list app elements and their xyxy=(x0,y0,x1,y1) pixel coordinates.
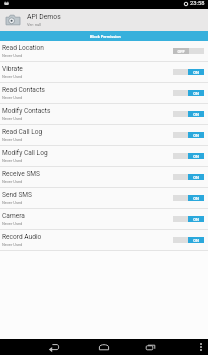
button[interactable]: Vibrate xyxy=(0,62,208,83)
staticText: Read Call Log xyxy=(2,128,43,136)
button[interactable]: Receive SMS xyxy=(0,167,208,188)
staticText: Never Used xyxy=(2,95,23,100)
button[interactable]: Toggle off xyxy=(173,48,204,54)
staticText: Never Used xyxy=(2,200,23,205)
staticText: ON xyxy=(193,238,199,243)
button[interactable]: Toggle on xyxy=(173,195,204,201)
button[interactable]: Modify Call Log xyxy=(0,146,208,167)
staticText: ON xyxy=(193,112,199,117)
staticText: OFF xyxy=(177,49,185,54)
button[interactable]: Toggle on xyxy=(173,174,204,180)
staticText: ON xyxy=(193,70,199,75)
button[interactable]: Camera xyxy=(0,209,208,230)
staticText: Modify Call Log xyxy=(2,149,48,157)
staticText: ON xyxy=(193,133,199,138)
button[interactable]: Recent apps xyxy=(142,339,160,355)
button[interactable]: Read Call Log xyxy=(0,125,208,146)
staticText: Never Used xyxy=(2,137,23,142)
staticText: Vibrate xyxy=(2,65,23,73)
staticText: Never Used xyxy=(2,242,23,247)
button[interactable]: Read Contacts xyxy=(0,83,208,104)
button[interactable]: Toggle on xyxy=(173,153,204,159)
button[interactable]: Toggle on xyxy=(173,216,204,222)
button[interactable]: Toggle on xyxy=(173,111,204,117)
staticText: Never Used xyxy=(2,179,23,184)
staticText: Modify Contacts xyxy=(2,107,51,115)
button[interactable]: Toggle on xyxy=(173,132,204,138)
staticText: Ver: null xyxy=(27,22,42,27)
button[interactable]: Read Location xyxy=(0,41,208,62)
staticText: Block Permission xyxy=(90,34,121,39)
staticText: API Demos xyxy=(27,13,61,21)
staticText: Send SMS xyxy=(2,191,32,199)
staticText: Read Contacts xyxy=(2,86,45,94)
staticText: ON xyxy=(193,196,199,201)
staticText: Camera xyxy=(2,212,25,220)
button[interactable]: Toggle on xyxy=(173,90,204,96)
staticText: ON xyxy=(193,175,199,180)
button[interactable]: Toggle on xyxy=(173,237,204,243)
staticText: 23:58 xyxy=(190,0,205,7)
button[interactable]: Back xyxy=(45,339,63,355)
staticText: Read Location xyxy=(2,44,45,52)
button[interactable]: More options xyxy=(194,339,208,355)
button[interactable]: Record Audio xyxy=(0,230,208,251)
staticText: Never Used xyxy=(2,53,23,58)
staticText: Never Used xyxy=(2,221,23,226)
staticText: ON xyxy=(193,217,199,222)
staticText: Never Used xyxy=(2,116,23,121)
staticText: Never Used xyxy=(2,74,23,79)
button[interactable]: Toggle on xyxy=(173,69,204,75)
staticText: ON xyxy=(193,91,199,96)
button[interactable]: Send SMS xyxy=(0,188,208,209)
button[interactable]: Modify Contacts xyxy=(0,104,208,125)
button[interactable]: Home xyxy=(95,339,113,355)
staticText: ON xyxy=(193,154,199,159)
staticText: Record Audio xyxy=(2,233,42,241)
staticText: Never Used xyxy=(2,158,23,163)
staticText: Receive SMS xyxy=(2,170,40,178)
